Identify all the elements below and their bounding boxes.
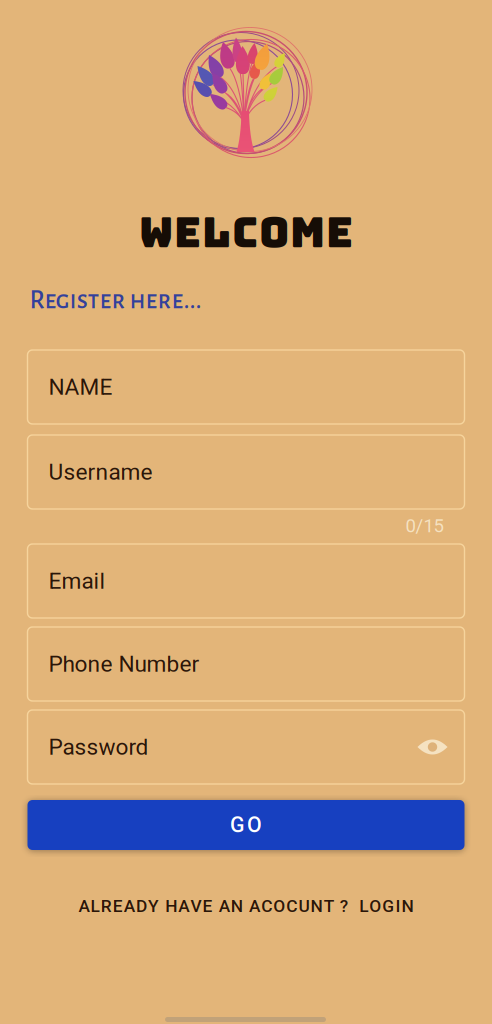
button[interactable]: Register here... bbox=[27, 279, 203, 322]
staticText: Email bbox=[48, 568, 105, 594]
staticText: NAME bbox=[48, 374, 112, 400]
staticText: Register here... bbox=[29, 287, 201, 314]
button[interactable]: NAME bbox=[27, 350, 464, 424]
button[interactable]: Phone Number bbox=[27, 627, 464, 701]
button[interactable]: ALREADY HAVE AN ACOCUNT ? LOGIN bbox=[0, 888, 492, 924]
staticText: ALREADY HAVE AN ACOCUNT ? LOGIN bbox=[78, 896, 414, 916]
staticText: Password bbox=[48, 734, 148, 760]
staticText: WELCOME bbox=[139, 205, 353, 260]
button[interactable]: Username bbox=[27, 435, 464, 509]
button[interactable]: GO bbox=[27, 800, 464, 850]
staticText: Phone Number bbox=[48, 651, 199, 677]
button[interactable]: Email bbox=[27, 544, 464, 618]
staticText: 0/15 bbox=[405, 515, 443, 537]
button[interactable]: Password bbox=[27, 710, 464, 784]
staticText: Username bbox=[48, 459, 152, 485]
staticText: GO bbox=[230, 812, 262, 837]
